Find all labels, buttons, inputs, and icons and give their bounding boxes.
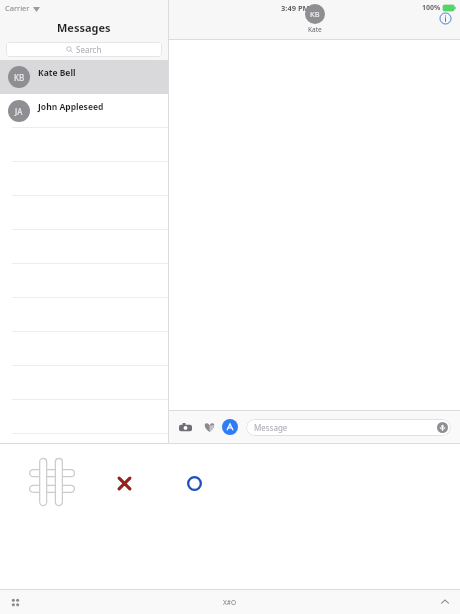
button[interactable]: Expand xyxy=(437,594,453,610)
staticText: Kate xyxy=(308,25,322,34)
staticText: John Appleseed xyxy=(38,101,104,113)
staticText: 100% xyxy=(422,3,441,13)
staticText: Kate Bell xyxy=(38,67,76,79)
staticText: Message xyxy=(254,422,288,433)
staticText: JA xyxy=(15,106,23,117)
button[interactable]: App Store xyxy=(222,419,238,435)
button[interactable]: Search xyxy=(6,42,162,57)
staticText: Search xyxy=(76,44,102,55)
button[interactable]: App drawer xyxy=(7,594,23,610)
staticText: KB xyxy=(310,9,320,19)
staticText: 3:49 PM xyxy=(281,3,310,13)
other: Send audio xyxy=(436,421,449,434)
button[interactable]: Details xyxy=(436,9,454,27)
button[interactable]: KB xyxy=(0,60,168,94)
button[interactable]: JA xyxy=(0,94,168,128)
staticText: X#O xyxy=(223,598,237,607)
button[interactable]: Digital Touch xyxy=(200,418,218,436)
button[interactable]: Message xyxy=(246,419,451,436)
staticText: KB xyxy=(14,72,25,83)
staticText: Messages xyxy=(57,20,111,35)
button[interactable]: Camera xyxy=(176,418,194,436)
button[interactable]: KB xyxy=(305,4,325,24)
button[interactable]: Tic tac toe board xyxy=(24,454,80,510)
button[interactable]: O marker xyxy=(180,469,208,497)
button[interactable]: X marker xyxy=(110,469,138,497)
staticText: Carrier xyxy=(5,3,30,13)
